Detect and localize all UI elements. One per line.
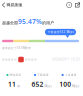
staticText: 上传速度 bbox=[65, 73, 77, 77]
staticText: 652 bbox=[32, 80, 44, 89]
staticText: ms bbox=[17, 84, 20, 88]
staticText: 11 bbox=[8, 80, 16, 89]
staticText: 下载速度 bbox=[37, 73, 49, 77]
staticText: 速率超过了653M宽带 bbox=[2, 46, 31, 50]
button[interactable]: Back bbox=[0, 0, 6, 10]
button[interactable]: Share bbox=[73, 1, 83, 9]
staticText: 2024/03/11 10:23 bbox=[52, 58, 80, 61]
staticText: 的用户 bbox=[42, 20, 54, 25]
staticText: 下载速度652 Mbps bbox=[47, 30, 73, 34]
staticText: 100 bbox=[59, 80, 71, 89]
staticText: Mbps bbox=[44, 84, 51, 88]
button[interactable]: Info bbox=[65, 1, 73, 9]
staticText: 网易测速 bbox=[6, 2, 22, 7]
staticText: 95.47% bbox=[18, 17, 42, 26]
staticText: 测速服务由 bbox=[2, 58, 17, 61]
staticText: 网络延迟 bbox=[9, 73, 21, 77]
staticText: 网易提供 bbox=[25, 58, 37, 61]
staticText: Mbps bbox=[72, 84, 79, 88]
staticText: 超越全国 bbox=[2, 20, 18, 25]
